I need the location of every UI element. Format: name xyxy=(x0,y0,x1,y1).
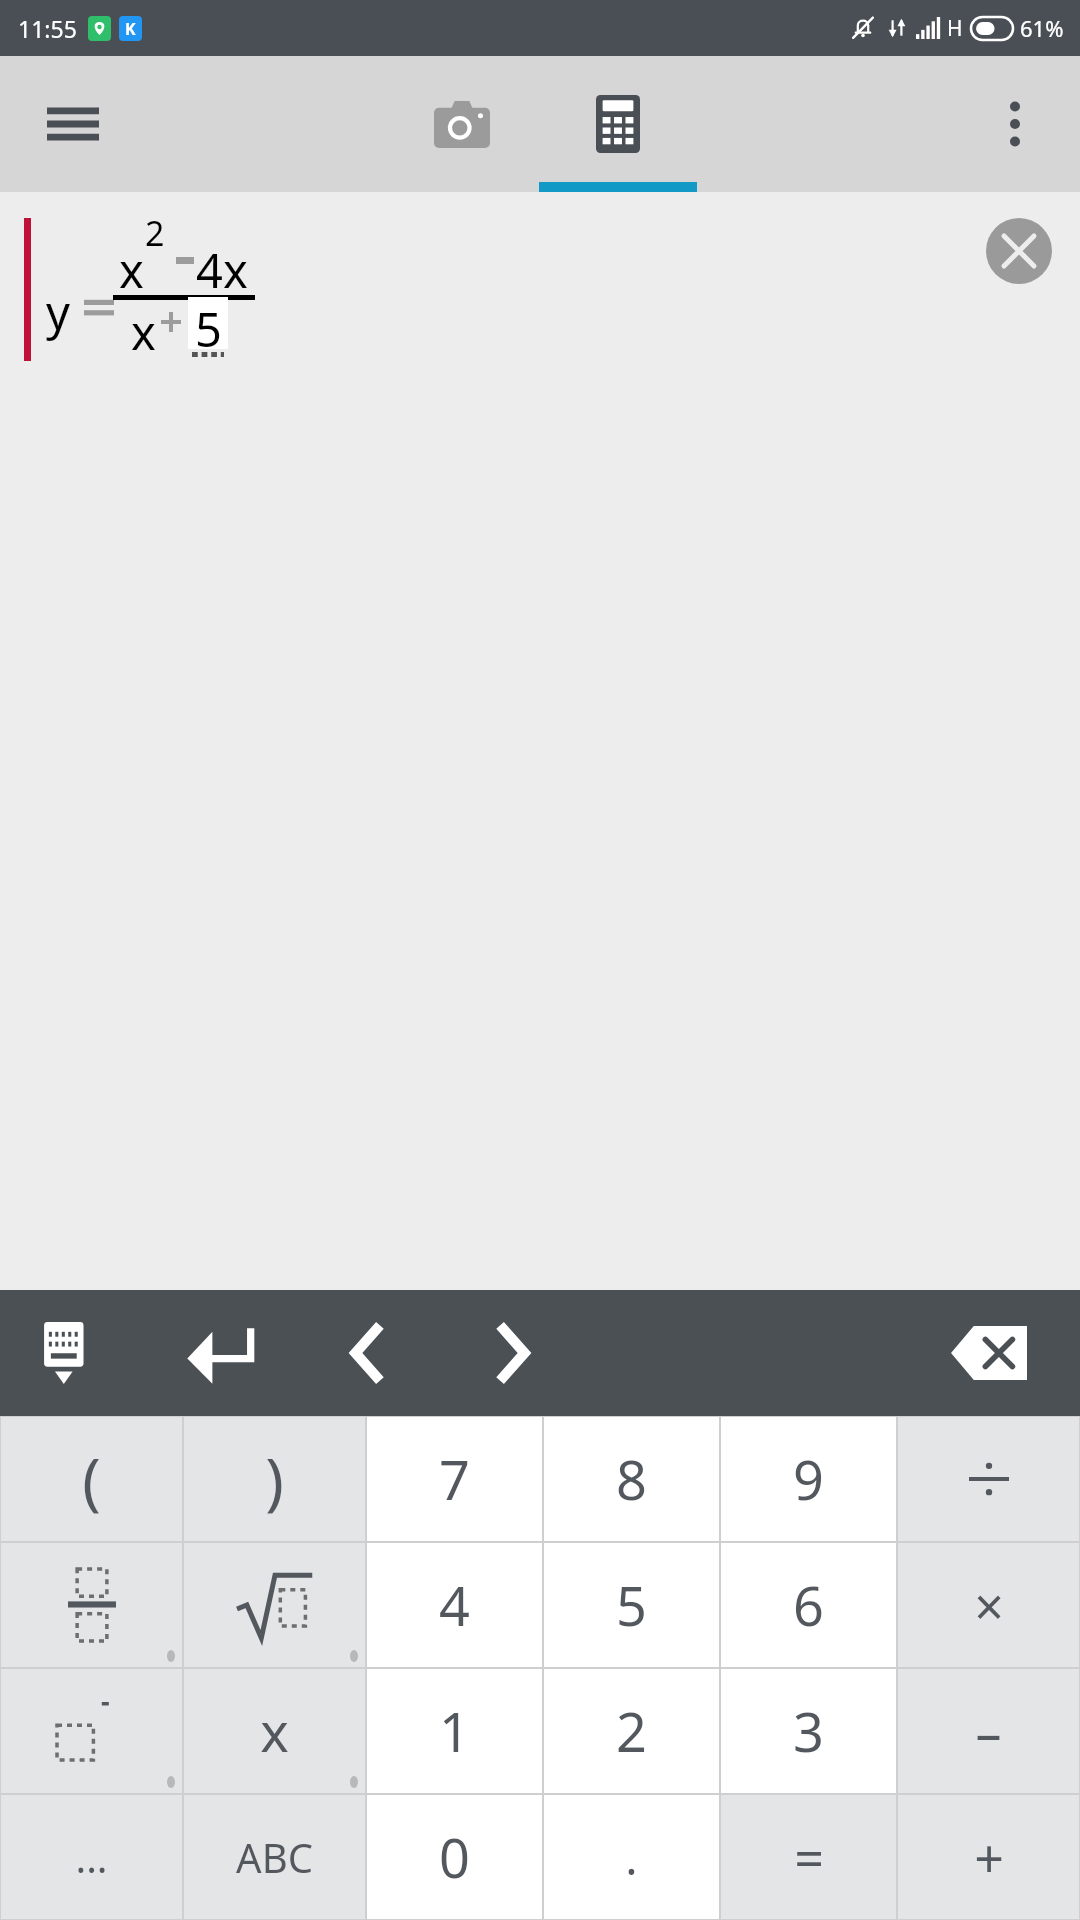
staticText: . xyxy=(625,1826,638,1889)
staticText: = xyxy=(794,1822,824,1893)
staticText: 7 xyxy=(439,1442,470,1516)
button[interactable]: More options xyxy=(980,89,1050,159)
button[interactable] xyxy=(898,1417,1079,1541)
staticText: 4x xyxy=(196,238,248,302)
staticText: ) xyxy=(265,1437,284,1521)
button[interactable]: × xyxy=(898,1543,1079,1667)
button[interactable]: Move left xyxy=(312,1298,422,1408)
button[interactable]: Camera xyxy=(407,69,517,179)
button[interactable]: 4 xyxy=(367,1543,542,1667)
button[interactable]: Enter xyxy=(164,1298,274,1408)
staticText: – xyxy=(975,1696,1002,1767)
staticText: 9 xyxy=(793,1442,824,1516)
staticText: 5 xyxy=(616,1568,647,1642)
button[interactable]: Move right xyxy=(458,1298,568,1408)
staticText: 3 xyxy=(793,1694,824,1768)
button[interactable]: 3 xyxy=(721,1669,896,1793)
button[interactable]: Hide keyboard xyxy=(22,1301,126,1405)
staticText: ( xyxy=(82,1437,101,1521)
button[interactable]: 8 xyxy=(544,1417,719,1541)
button[interactable]: – xyxy=(898,1669,1079,1793)
staticText: 0 xyxy=(439,1820,470,1894)
button[interactable] xyxy=(1,1543,182,1667)
staticText: 5 xyxy=(195,297,222,349)
staticText: 6 xyxy=(793,1568,824,1642)
staticText: ... xyxy=(75,1830,108,1884)
button[interactable]: ( xyxy=(1,1417,182,1541)
button[interactable]: x xyxy=(184,1669,365,1793)
staticText: y xyxy=(46,280,70,344)
button[interactable]: 0 xyxy=(367,1795,542,1919)
button[interactable]: 7 xyxy=(367,1417,542,1541)
staticText: 2 xyxy=(616,1694,647,1768)
button[interactable]: Calculator xyxy=(563,69,673,179)
staticText: + xyxy=(974,1822,1004,1893)
staticText: 61% xyxy=(1020,13,1064,43)
staticText: K xyxy=(125,18,136,40)
staticText: 8 xyxy=(616,1442,647,1516)
button[interactable]: Clear xyxy=(986,218,1052,284)
button[interactable]: 6 xyxy=(721,1543,896,1667)
staticText: 2 xyxy=(145,210,165,256)
button[interactable] xyxy=(1,1669,182,1793)
button[interactable]: 1 xyxy=(367,1669,542,1793)
button[interactable]: Menu xyxy=(38,89,108,159)
staticText: x xyxy=(131,300,156,364)
button[interactable]: ) xyxy=(184,1417,365,1541)
staticText: 1 xyxy=(439,1694,470,1768)
button[interactable]: 2 xyxy=(544,1669,719,1793)
staticText: x xyxy=(119,238,144,302)
button[interactable]: 5 xyxy=(544,1543,719,1667)
staticText: 4 xyxy=(439,1568,470,1642)
staticText: x xyxy=(260,1694,289,1768)
staticText: 11:55 xyxy=(18,13,77,44)
button[interactable]: Backspace xyxy=(934,1298,1044,1408)
button[interactable]: ... xyxy=(1,1795,182,1919)
staticText: × xyxy=(974,1570,1004,1641)
button[interactable]: . xyxy=(544,1795,719,1919)
staticText: ABC xyxy=(236,1830,313,1884)
button[interactable]: 9 xyxy=(721,1417,896,1541)
button[interactable] xyxy=(184,1543,365,1667)
button[interactable]: + xyxy=(898,1795,1079,1919)
button[interactable]: = xyxy=(721,1795,896,1919)
button[interactable]: ABC xyxy=(184,1795,365,1919)
staticText: H xyxy=(947,14,963,43)
